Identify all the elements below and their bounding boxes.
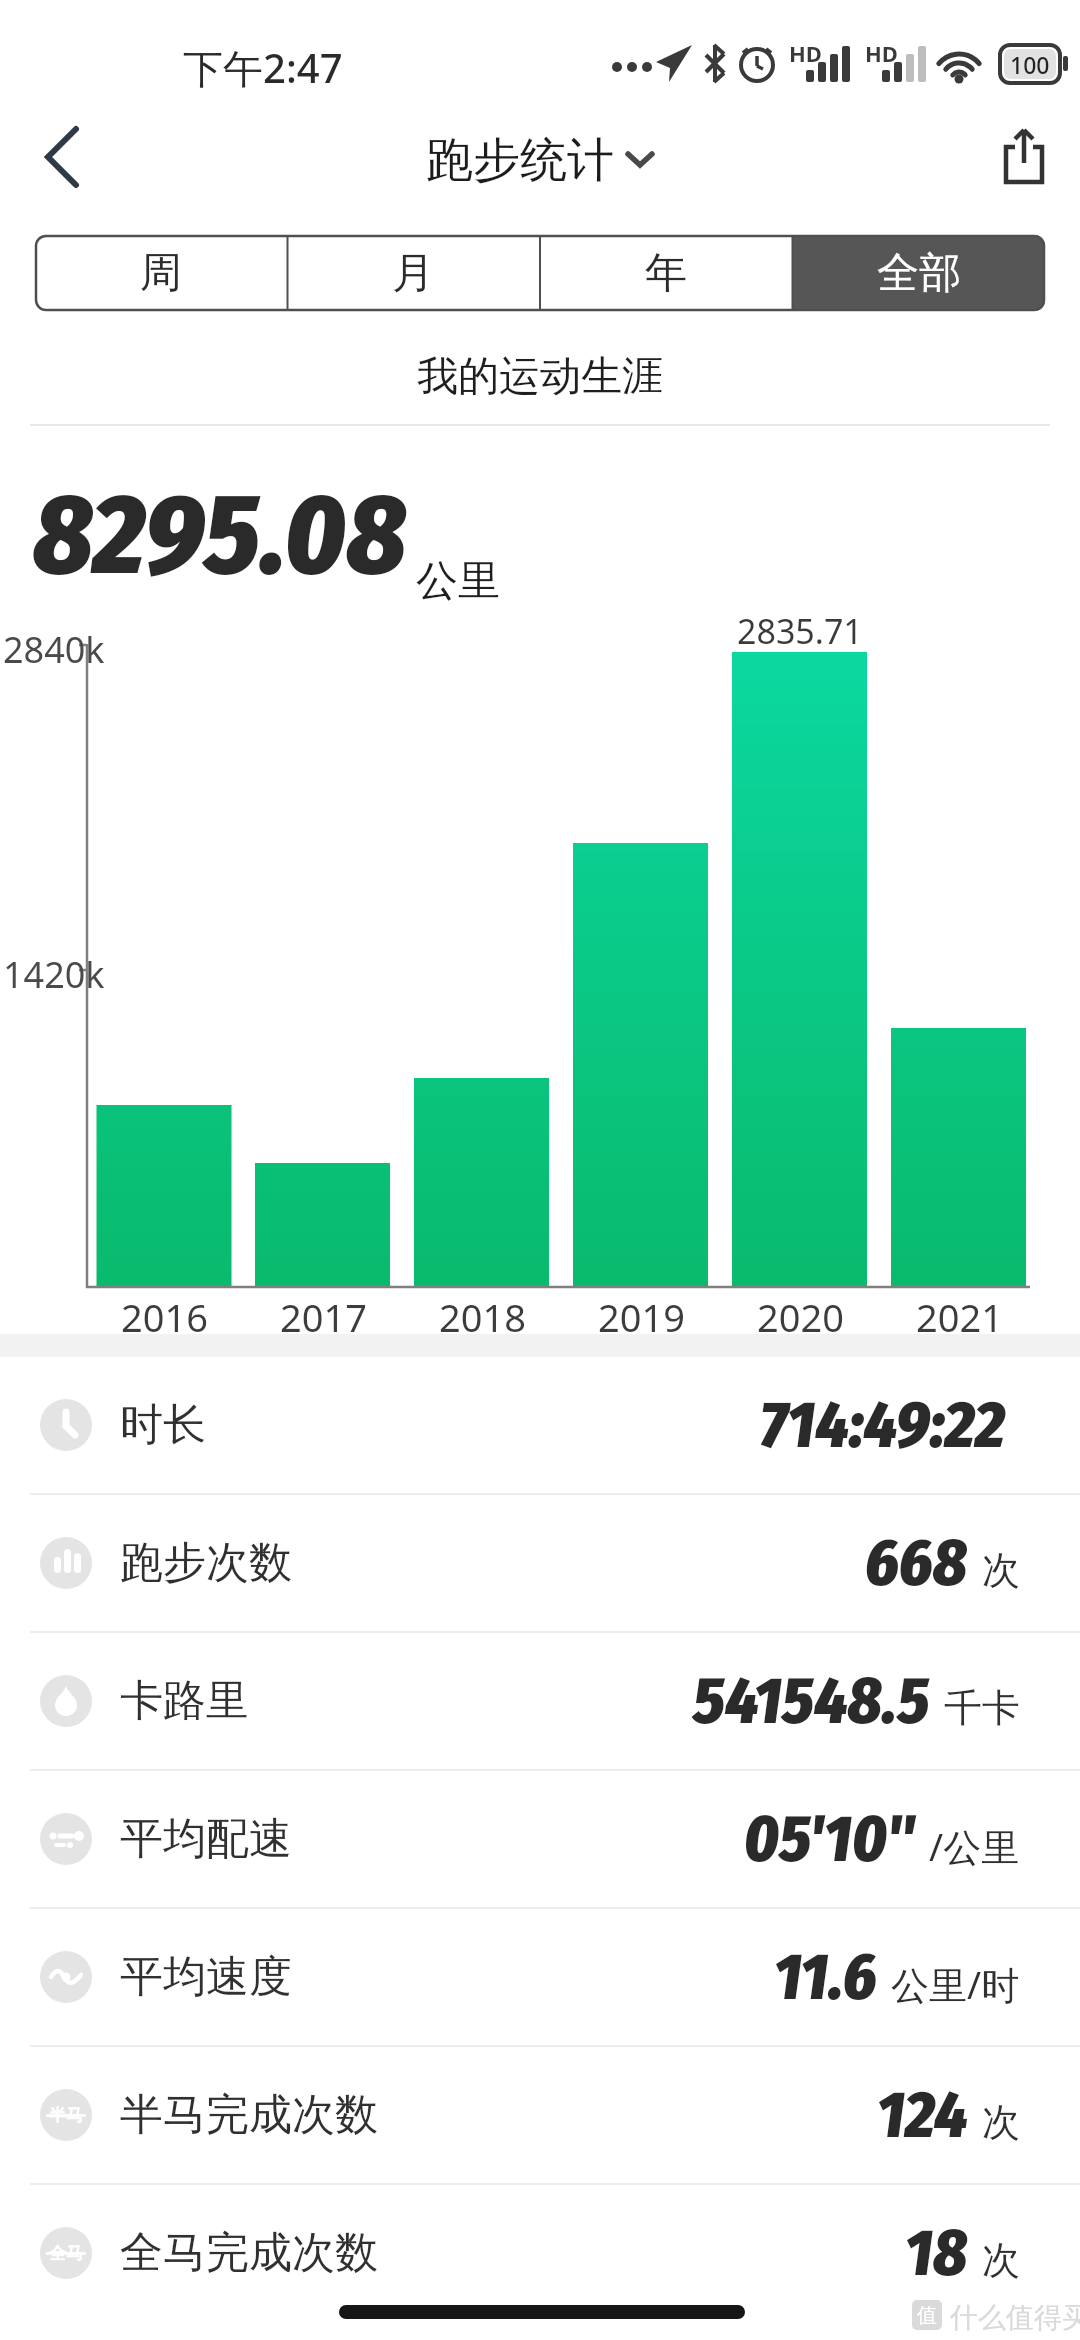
staticText: 1420k bbox=[3, 950, 105, 999]
staticText: 124 bbox=[877, 2077, 968, 2154]
staticText: 公里 bbox=[416, 555, 500, 608]
staticText: 卡路里 bbox=[120, 1674, 249, 1728]
staticText: 全马完成次数 bbox=[120, 2226, 378, 2280]
staticText: 下午2:47 bbox=[183, 40, 343, 95]
staticText: 2016 bbox=[121, 1291, 208, 1343]
staticText: 全部 bbox=[877, 247, 961, 300]
staticText: 月 bbox=[392, 247, 434, 300]
staticText: 周 bbox=[140, 247, 182, 300]
staticText: 2018 bbox=[439, 1291, 526, 1343]
staticText: 2019 bbox=[598, 1291, 685, 1343]
staticText: 11.6 bbox=[774, 1939, 877, 2016]
staticText: 什么值得买 bbox=[950, 2300, 1080, 2335]
button[interactable]: 半马 bbox=[0, 2047, 1080, 2183]
button[interactable]: 全部 bbox=[792, 235, 1045, 311]
staticText: 我的运动生涯 bbox=[417, 351, 663, 403]
button[interactable]: 平均配速 bbox=[0, 1771, 1080, 1907]
staticText: 时长 bbox=[120, 1398, 206, 1452]
staticText: 2017 bbox=[280, 1291, 367, 1343]
staticText: 541548.5 bbox=[693, 1663, 930, 1740]
staticText: 次 bbox=[982, 2236, 1020, 2284]
staticText: 18 bbox=[905, 2215, 968, 2292]
staticText: 公里/时 bbox=[891, 1958, 1020, 2010]
button[interactable]: 全马 bbox=[0, 2185, 1080, 2321]
staticText: 次 bbox=[982, 2098, 1020, 2146]
staticText: 值 bbox=[917, 2303, 937, 2328]
staticText: 跑步次数 bbox=[120, 1536, 292, 1590]
button[interactable]: 平均速度 bbox=[0, 1909, 1080, 2045]
staticText: 平均配速 bbox=[120, 1812, 292, 1866]
staticText: HD bbox=[789, 38, 822, 68]
staticText: HD bbox=[865, 38, 898, 68]
button[interactable] bbox=[30, 127, 94, 191]
staticText: 次 bbox=[982, 1546, 1020, 1594]
staticText: 668 bbox=[865, 1525, 968, 1602]
staticText: 2840k bbox=[3, 625, 105, 674]
button[interactable]: 月 bbox=[287, 235, 539, 311]
staticText: 2020 bbox=[757, 1291, 844, 1343]
staticText: 千卡 bbox=[944, 1684, 1020, 1732]
staticText: 2835.71 bbox=[737, 608, 863, 654]
staticText: 半马完成次数 bbox=[120, 2088, 378, 2142]
button[interactable] bbox=[993, 125, 1057, 191]
staticText: 年 bbox=[645, 247, 687, 300]
staticText: /公里 bbox=[929, 1820, 1020, 1872]
staticText: 平均速度 bbox=[120, 1950, 292, 2004]
staticText: 100 bbox=[1010, 49, 1050, 79]
button[interactable]: 跑步次数 bbox=[0, 1495, 1080, 1631]
staticText: 全马 bbox=[49, 2243, 83, 2264]
staticText: 05'10" bbox=[744, 1801, 915, 1878]
button[interactable]: 卡路里 bbox=[0, 1633, 1080, 1769]
button[interactable]: 时长 bbox=[0, 1357, 1080, 1493]
button[interactable]: 周 bbox=[35, 235, 287, 311]
staticText: 8295.08 bbox=[33, 468, 407, 602]
staticText: 714:49:22 bbox=[760, 1387, 1006, 1464]
staticText: 半马 bbox=[49, 2105, 83, 2126]
staticText: 跑步统计 bbox=[426, 131, 614, 187]
staticText: 2021 bbox=[916, 1291, 1003, 1343]
button[interactable]: 年 bbox=[539, 235, 792, 311]
button[interactable]: 跑步统计 bbox=[0, 131, 1080, 187]
